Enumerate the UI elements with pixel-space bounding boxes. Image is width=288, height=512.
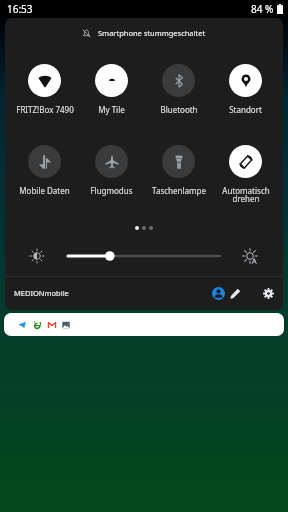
staticText: My Tile [98,104,125,115]
staticText: Automatisch drehen [222,185,270,204]
button[interactable]: Bluetooth [145,64,212,115]
button[interactable]: Flugmodus [78,145,145,196]
staticText: Standort [229,104,262,115]
button[interactable]: Taschenlampe [145,145,212,196]
button[interactable]: Mobile Daten [11,145,78,196]
staticText: 84 % [251,2,274,16]
button[interactable]: Standort [212,64,279,115]
staticText: MEDIONmobile [14,288,69,298]
button[interactable]: My Tile [78,64,145,115]
staticText: Bluetooth [160,104,198,115]
staticText: 16:53 [7,2,33,16]
button[interactable]: Automatisch drehen [212,145,279,204]
button[interactable]: FRITZ!Box 7490 [11,64,78,115]
staticText: Flugmodus [90,185,133,196]
staticText: FRITZ!Box 7490 [16,104,74,115]
staticText: Smartphone stummgeschaltet [98,28,206,38]
button[interactable] [4,313,284,336]
staticText: Taschenlampe [152,185,206,196]
button[interactable]: Edit tiles [224,282,246,304]
button[interactable]: Settings [257,282,279,304]
button[interactable]: User account [207,282,229,304]
staticText: Mobile Daten [19,185,70,196]
